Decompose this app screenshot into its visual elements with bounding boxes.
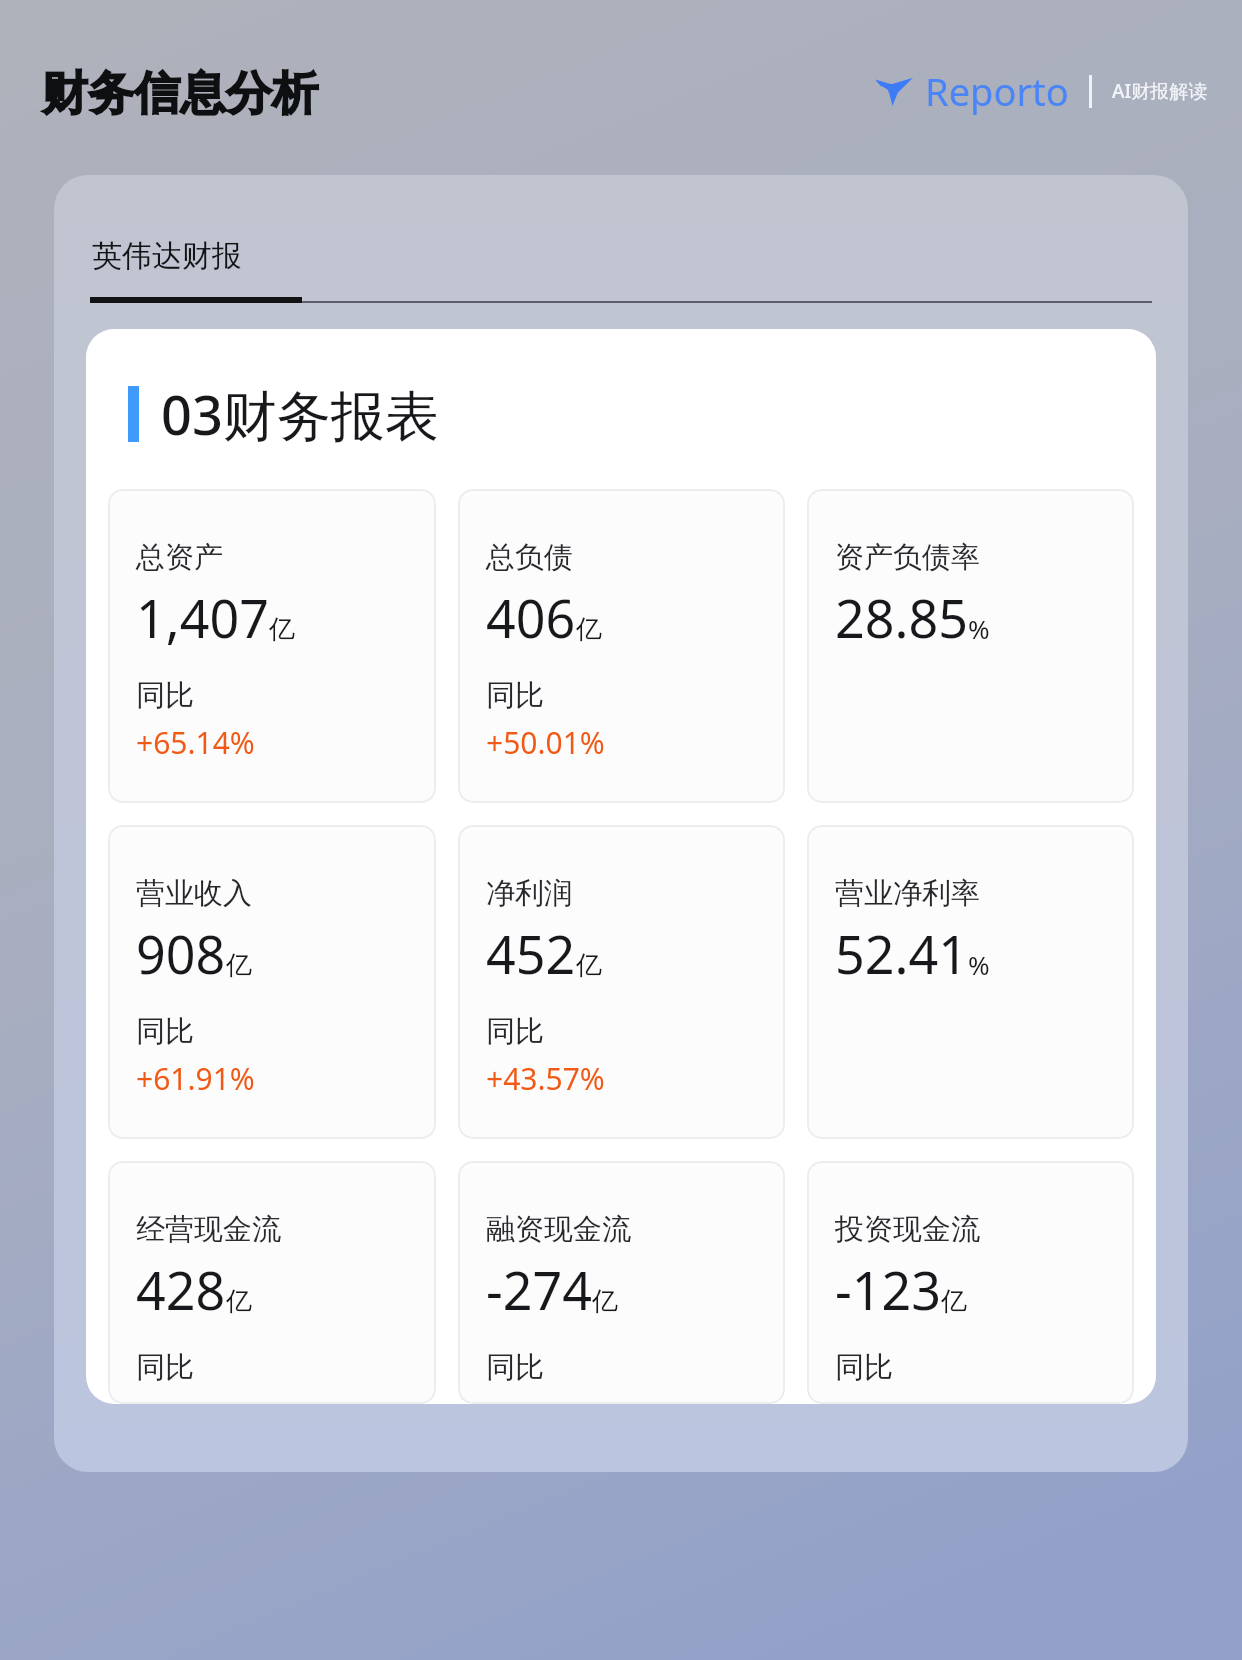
staticText: 1,407 — [136, 582, 269, 653]
staticText: -39.04% — [835, 1394, 947, 1404]
staticText: 同比 — [486, 677, 544, 714]
staticText: 经营现金流 — [136, 1211, 281, 1248]
staticText: +43.57% — [486, 1058, 605, 1099]
staticText: 03财务报表 — [161, 377, 439, 451]
button[interactable]: 营业净利率 — [807, 825, 1134, 1139]
staticText: Reporto — [925, 65, 1069, 117]
staticText: 428 — [136, 1254, 226, 1325]
staticText: 净利润 — [486, 875, 573, 912]
staticText: 投资现金流 — [835, 1211, 980, 1248]
staticText: 同比 — [136, 677, 194, 714]
staticText: 亿 — [226, 1285, 252, 1318]
staticText: 28.85 — [835, 582, 968, 653]
staticText: 亿 — [941, 1285, 967, 1318]
staticText: 亿 — [592, 1285, 618, 1318]
staticText: 406 — [486, 582, 576, 653]
staticText: 亿 — [226, 949, 252, 982]
button[interactable]: 营业收入 — [108, 825, 436, 1139]
staticText: +50.01% — [486, 722, 605, 763]
staticText: 总负债 — [486, 539, 573, 576]
staticText: % — [968, 611, 990, 646]
button[interactable]: 资产负债率 — [807, 489, 1134, 803]
staticText: 同比 — [835, 1349, 893, 1386]
button[interactable]: 投资现金流 — [807, 1161, 1134, 1404]
staticText: +65.14% — [136, 722, 255, 763]
staticText: 52.41 — [835, 918, 968, 989]
button[interactable]: 净利润 — [458, 825, 785, 1139]
staticText: 营业收入 — [136, 875, 252, 912]
staticText: 营业净利率 — [835, 875, 980, 912]
button[interactable]: Reporto AI 财报解读 — [875, 65, 1208, 117]
button[interactable]: 总负债 — [458, 489, 785, 803]
staticText: 908 — [136, 918, 226, 989]
button[interactable]: 总资产 — [108, 489, 436, 803]
staticText: -123 — [835, 1254, 941, 1325]
staticText: 亿 — [576, 613, 602, 646]
staticText: +61.91% — [136, 1058, 255, 1099]
staticText: 同比 — [486, 1013, 544, 1050]
staticText: 同比 — [136, 1013, 194, 1050]
staticText: 总资产 — [136, 539, 223, 576]
staticText: 同比 — [136, 1349, 194, 1386]
staticText: 财务信息分析 — [42, 65, 318, 123]
button[interactable]: 英伟达财报 — [90, 211, 302, 303]
staticText: 亿 — [269, 613, 295, 646]
staticText: -39.26% — [486, 1394, 598, 1404]
staticText: 同比 — [486, 1349, 544, 1386]
staticText: 亿 — [576, 949, 602, 982]
staticText: 资产负债率 — [835, 539, 980, 576]
button[interactable]: 融资现金流 — [458, 1161, 785, 1404]
button[interactable]: 经营现金流 — [108, 1161, 436, 1404]
staticText: AI财报解读 — [1112, 78, 1208, 104]
staticText: % — [968, 947, 990, 982]
staticText: -274 — [486, 1254, 592, 1325]
staticText: +43.39% — [136, 1394, 255, 1404]
staticText: 融资现金流 — [486, 1211, 631, 1248]
staticText: 452 — [486, 918, 576, 989]
staticText: 英伟达财报 — [92, 237, 242, 275]
